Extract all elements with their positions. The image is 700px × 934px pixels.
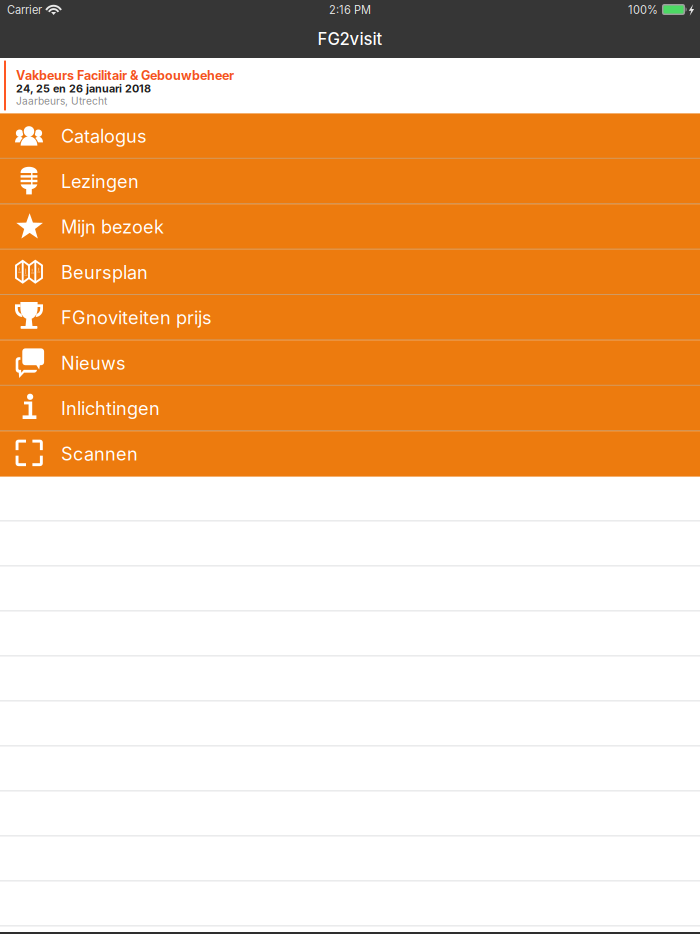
- staticText: Jaarbeurs, Utrecht: [16, 95, 107, 107]
- button[interactable]: Mijn bezoek: [0, 204, 700, 250]
- staticText: Mijn bezoek: [61, 216, 164, 238]
- staticText: Catalogus: [61, 125, 147, 147]
- staticText: Lezingen: [61, 170, 139, 192]
- button[interactable]: Scannen: [0, 431, 700, 477]
- staticText: 100%: [628, 3, 658, 17]
- staticText: 2:16 PM: [329, 3, 371, 17]
- staticText: Scannen: [61, 443, 138, 465]
- button[interactable]: Catalogus: [0, 113, 700, 159]
- staticText: Nieuws: [61, 352, 126, 374]
- staticText: Carrier: [7, 3, 42, 17]
- staticText: Beursplan: [61, 261, 148, 283]
- button[interactable]: Inlichtingen: [0, 386, 700, 431]
- button[interactable]: Lezingen: [0, 159, 700, 204]
- staticText: FGnoviteiten prijs: [61, 307, 212, 329]
- staticText: 24, 25 en 26 januari 2018: [16, 82, 151, 95]
- button[interactable]: Vakbeurs Facilitair & Gebouwbeheer: [0, 58, 700, 113]
- staticText: Vakbeurs Facilitair & Gebouwbeheer: [16, 68, 234, 83]
- button[interactable]: FGnoviteiten prijs: [0, 295, 700, 340]
- button[interactable]: Beursplan: [0, 250, 700, 295]
- button[interactable]: Nieuws: [0, 340, 700, 386]
- staticText: Inlichtingen: [61, 397, 160, 419]
- staticText: FG2visit: [317, 29, 382, 49]
